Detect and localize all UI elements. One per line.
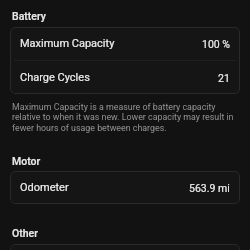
button[interactable]: Charge Cycles (10, 61, 240, 94)
button[interactable]: Serial Number (10, 244, 240, 250)
button[interactable]: Maximum Capacity (10, 27, 240, 60)
staticText: Battery (12, 10, 46, 22)
staticText: Other (12, 227, 38, 239)
staticText: 563.9 mi (189, 182, 230, 194)
button[interactable]: Odometer (10, 171, 240, 204)
staticText: 21 (218, 72, 230, 84)
staticText: Motor (12, 155, 41, 167)
staticText: Odometer (20, 181, 69, 194)
staticText: Maximum Capacity (20, 37, 115, 50)
staticText: Charge Cycles (20, 71, 90, 84)
staticText: 100 % (202, 38, 230, 50)
staticText: Maximum Capacity is a measure of battery… (12, 102, 238, 134)
